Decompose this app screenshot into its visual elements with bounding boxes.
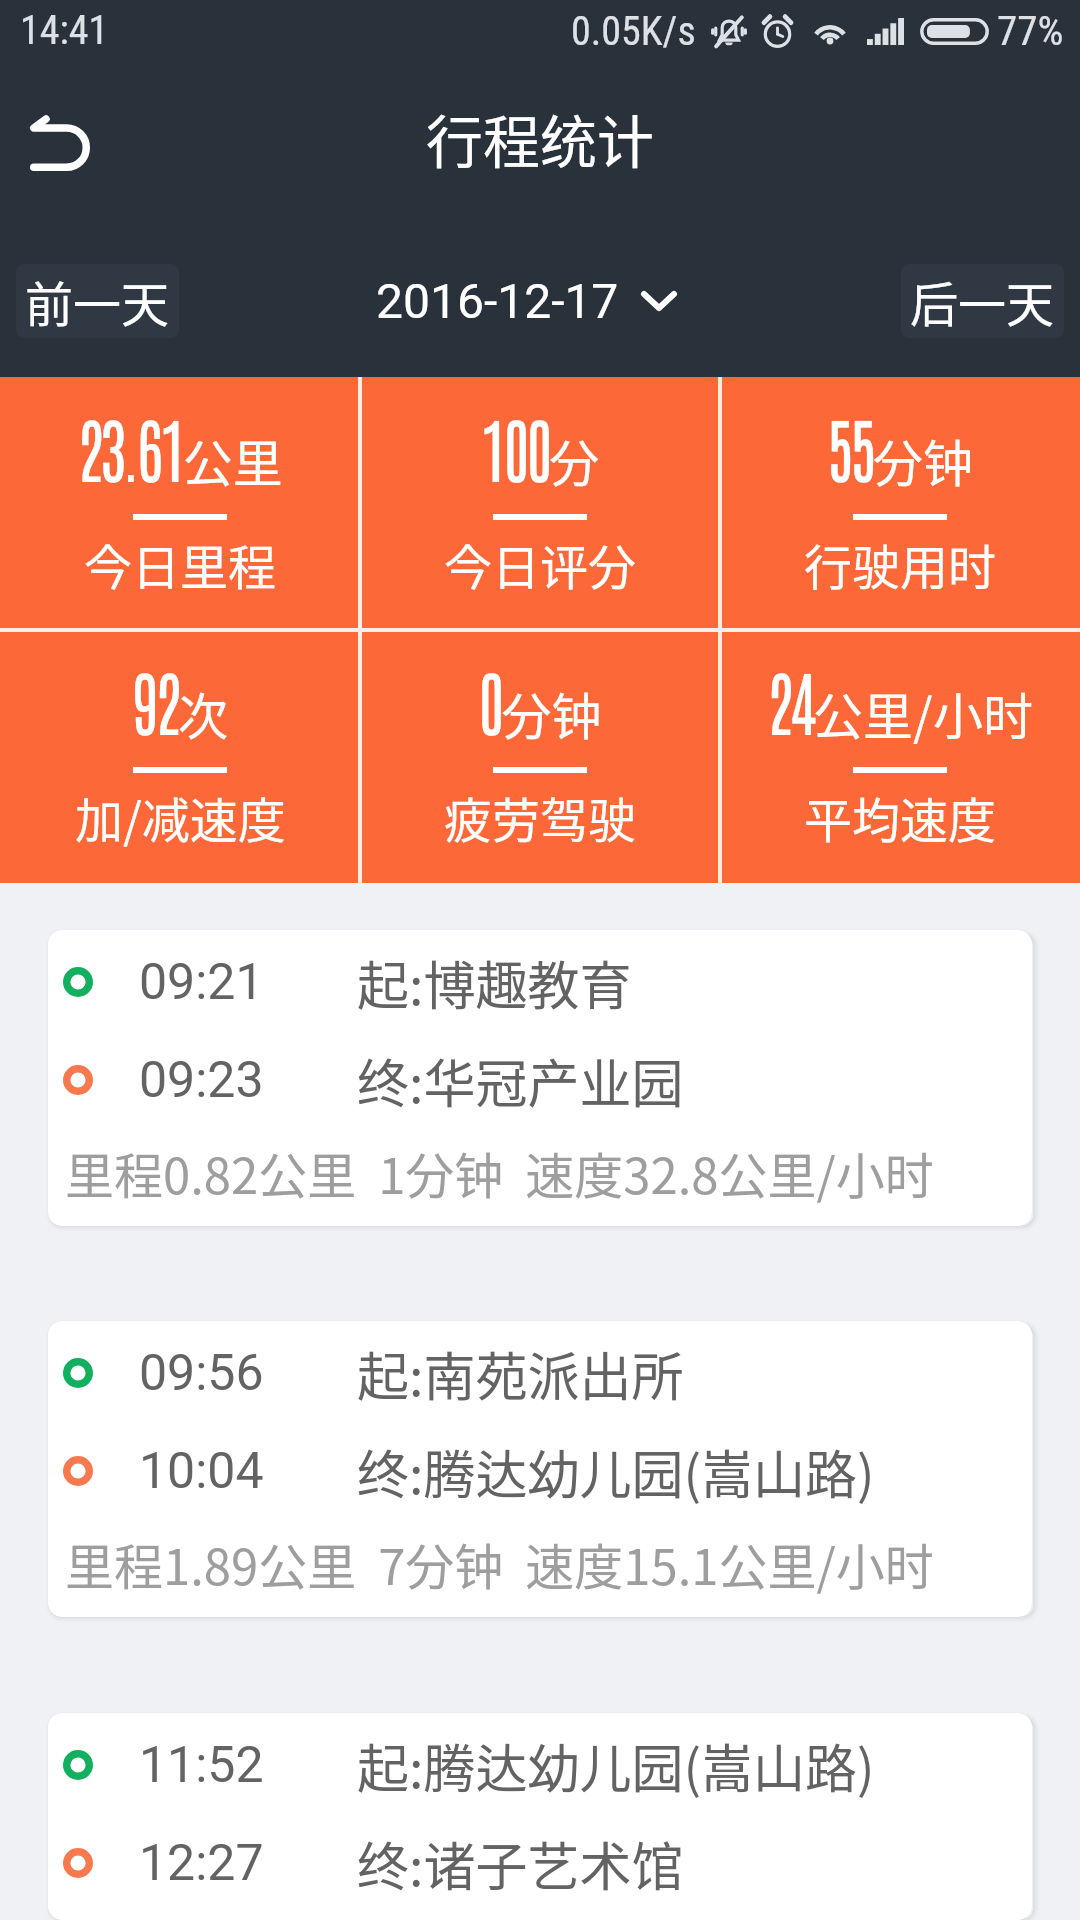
- button[interactable]: 行驶用时: [720, 377, 1080, 630]
- button[interactable]: 平均速度: [720, 630, 1080, 883]
- button[interactable]: 后一天: [901, 264, 1064, 338]
- staticText: 14:41: [20, 7, 109, 54]
- staticText: 终:腾达幼儿园(嵩山路): [357, 1434, 875, 1509]
- button[interactable]: 今日评分: [360, 377, 720, 630]
- button[interactable]: 09:21: [48, 930, 1032, 1226]
- staticText: 平均速度: [804, 782, 997, 852]
- staticText: 起:腾达幼儿园(嵩山路): [357, 1728, 875, 1803]
- staticText: 行程统计: [426, 97, 654, 180]
- button[interactable]: 09:56: [48, 1321, 1032, 1617]
- staticText: 12:27: [139, 1834, 357, 1893]
- staticText: 里程1.89公里 7分钟 速度15.1公里/小时: [65, 1528, 934, 1599]
- staticText: 0.05K/s: [571, 8, 696, 55]
- button[interactable]: 今日里程: [0, 377, 360, 630]
- staticText: 09:23: [139, 1051, 357, 1110]
- staticText: 今日评分: [444, 529, 637, 599]
- button[interactable]: Back: [10, 96, 110, 192]
- staticText: 前一天: [25, 266, 170, 336]
- button[interactable]: 疲劳驾驶: [360, 630, 720, 883]
- staticText: 行驶用时: [804, 529, 997, 599]
- staticText: 11:52: [139, 1736, 357, 1795]
- staticText: 终:华冠产业园: [357, 1043, 684, 1118]
- button[interactable]: 11:52: [48, 1713, 1032, 1920]
- button[interactable]: 2016-12-17: [364, 262, 689, 340]
- staticText: 后一天: [910, 266, 1055, 336]
- staticText: 疲劳驾驶: [444, 782, 637, 852]
- staticText: 09:56: [139, 1344, 357, 1403]
- button[interactable]: 加/减速度: [0, 630, 360, 883]
- staticText: 77%: [997, 7, 1064, 55]
- staticText: 2016-12-17: [376, 273, 619, 329]
- staticText: 起:南苑派出所: [357, 1336, 684, 1411]
- staticText: 里程0.82公里 1分钟 速度32.8公里/小时: [65, 1137, 934, 1208]
- staticText: 终:诸子艺术馆: [357, 1826, 684, 1901]
- staticText: 今日里程: [84, 529, 277, 599]
- button[interactable]: 前一天: [16, 264, 179, 338]
- staticText: 加/减速度: [75, 782, 286, 852]
- staticText: 10:04: [139, 1442, 357, 1501]
- staticText: 起:博趣教育: [357, 945, 632, 1020]
- staticText: 09:21: [139, 953, 357, 1012]
